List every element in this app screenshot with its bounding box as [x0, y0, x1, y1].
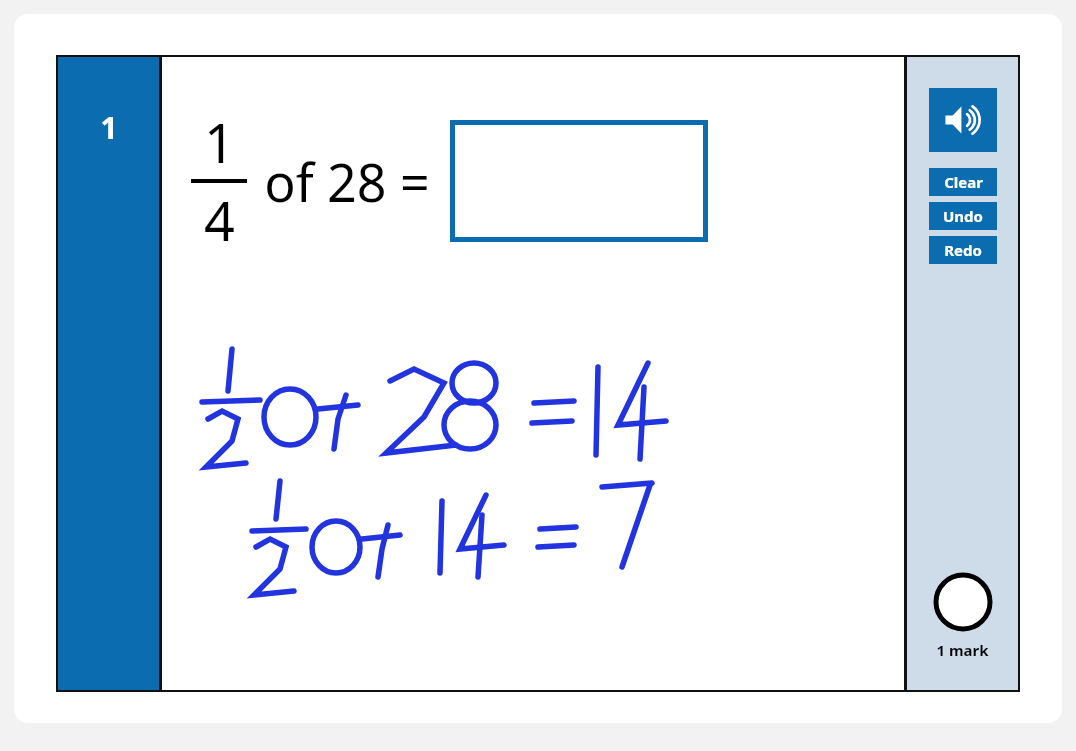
- button[interactable]: [450, 120, 708, 242]
- staticText: Undo: [943, 206, 983, 226]
- button[interactable]: Undo: [929, 202, 997, 230]
- staticText: 1 mark: [936, 640, 989, 660]
- button[interactable]: Redo: [929, 236, 997, 264]
- staticText: of 28 =: [264, 146, 430, 217]
- staticText: 1: [100, 107, 118, 148]
- button[interactable]: Clear: [929, 168, 997, 196]
- staticText: Redo: [944, 240, 982, 260]
- staticText: Clear: [944, 172, 983, 192]
- staticText: 1: [204, 105, 235, 179]
- button[interactable]: Play audio: [929, 88, 997, 152]
- staticText: 4: [204, 183, 235, 257]
